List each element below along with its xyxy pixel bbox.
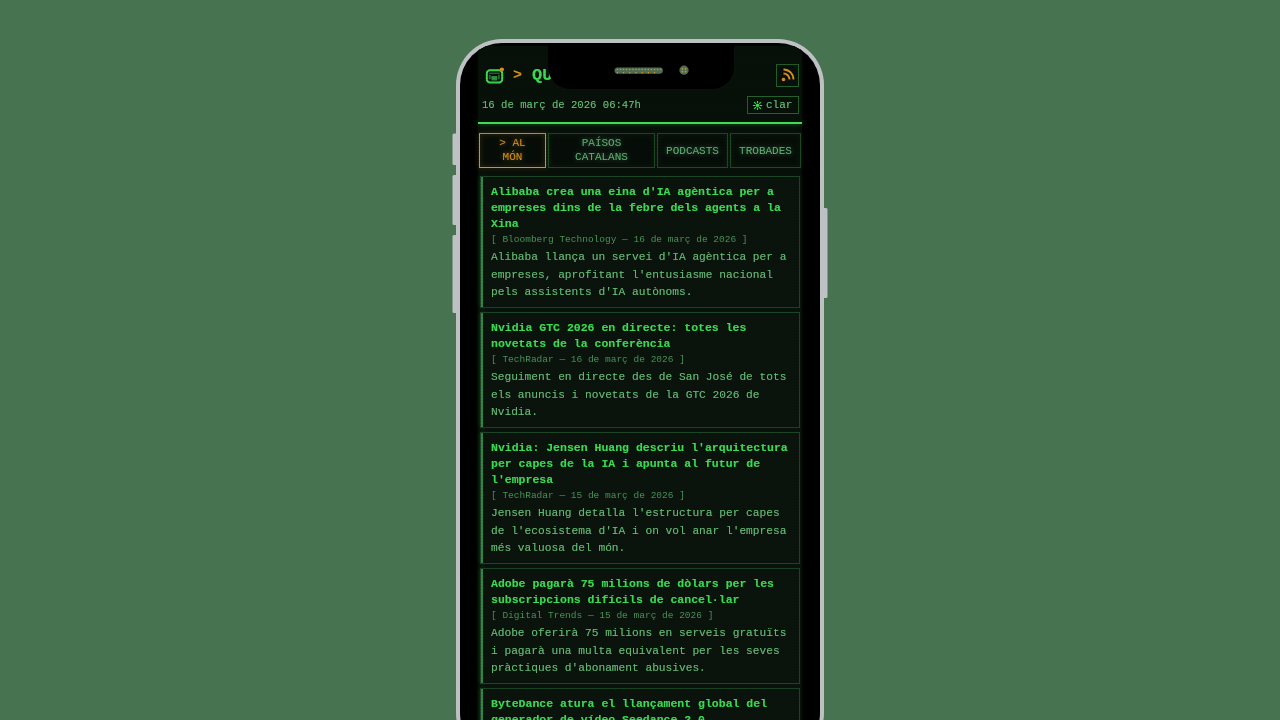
button[interactable]: PODCASTS (657, 133, 728, 168)
staticText: [ TechRadar — 16 de març de 2026 ] (491, 354, 685, 365)
staticText: ByteDance atura el llançament global del… (491, 697, 794, 720)
staticText: Alibaba llança un servei d'IA agèntica p… (491, 251, 794, 298)
staticText: clar (766, 99, 793, 111)
staticText: clar (766, 99, 793, 111)
button[interactable]: PAÍSOS CATALANS (548, 133, 655, 168)
staticText: [ Bloomberg Technology — 16 de març de 2… (491, 234, 748, 245)
button[interactable]: RSS feed (776, 64, 799, 87)
staticText: PODCASTS (666, 145, 719, 157)
staticText: [ TechRadar — 16 de març de 2026 ] (491, 354, 685, 365)
staticText: 16 de març de 2026 06:47h (482, 99, 641, 111)
button[interactable]: Alibaba crea una eina d'IA agèntica per … (480, 176, 800, 308)
staticText: TROBADES (739, 145, 792, 157)
staticText: Seguiment en directe des de San José de … (491, 371, 794, 418)
button[interactable]: Nvidia GTC 2026 en directe: totes les no… (480, 312, 800, 428)
button[interactable]: PAÍSOS CATALANS (548, 133, 655, 168)
staticText: [ Digital Trends — 15 de març de 2026 ] (491, 610, 714, 621)
button[interactable]: clar (753, 99, 793, 111)
staticText: Jensen Huang detalla l'estructura per ca… (491, 507, 794, 554)
staticText: ByteDance atura el llançament global del… (491, 697, 794, 720)
button[interactable]: > AL MÓN (479, 133, 546, 168)
button[interactable]: Adobe pagarà 75 milions de dòlars per le… (480, 568, 800, 684)
staticText: > AL MÓN (499, 137, 526, 164)
staticText: > AL MÓN (499, 137, 526, 164)
staticText: Nvidia: Jensen Huang descriu l'arquitect… (491, 441, 794, 486)
staticText: Adobe oferirà 75 milions en serveis grat… (491, 627, 794, 674)
button[interactable]: TROBADES (730, 133, 801, 168)
button[interactable]: Nvidia: Jensen Huang descriu l'arquitect… (480, 432, 800, 564)
button[interactable]: Adobe pagarà 75 milions de dòlars per le… (480, 568, 800, 684)
button[interactable]: TROBADES (730, 133, 801, 168)
staticText: QUIOSC (532, 66, 594, 85)
staticText: Nvidia: Jensen Huang descriu l'arquitect… (491, 441, 794, 486)
staticText: PODCASTS (666, 145, 719, 157)
staticText: Jensen Huang detalla l'estructura per ca… (491, 507, 794, 554)
staticText: Adobe pagarà 75 milions de dòlars per le… (491, 577, 794, 606)
staticText: [ TechRadar — 15 de març de 2026 ] (491, 490, 685, 501)
staticText: Nvidia GTC 2026 en directe: totes les no… (491, 321, 794, 350)
button[interactable]: RSS feed (776, 64, 799, 87)
staticText: Nvidia GTC 2026 en directe: totes les no… (491, 321, 794, 350)
button[interactable]: ByteDance atura el llançament global del… (480, 688, 800, 720)
button[interactable]: Alibaba crea una eina d'IA agèntica per … (480, 176, 800, 308)
staticText: > (513, 67, 523, 84)
staticText: [ TechRadar — 15 de març de 2026 ] (491, 490, 685, 501)
staticText: Alibaba crea una eina d'IA agèntica per … (491, 185, 794, 230)
staticText: Alibaba crea una eina d'IA agèntica per … (491, 185, 794, 230)
staticText: > (513, 67, 523, 84)
staticText: Adobe oferirà 75 milions en serveis grat… (491, 627, 794, 674)
staticText: PAÍSOS CATALANS (575, 137, 628, 164)
staticText: [ Bloomberg Technology — 16 de març de 2… (491, 234, 748, 245)
button[interactable]: Nvidia GTC 2026 en directe: totes les no… (480, 312, 800, 428)
staticText: QUIOSC (532, 66, 594, 85)
button[interactable]: clar (753, 99, 793, 111)
staticText: Adobe pagarà 75 milions de dòlars per le… (491, 577, 794, 606)
staticText: [ Digital Trends — 15 de març de 2026 ] (491, 610, 714, 621)
button[interactable]: Nvidia: Jensen Huang descriu l'arquitect… (480, 432, 800, 564)
staticText: PAÍSOS CATALANS (575, 137, 628, 164)
button[interactable]: PODCASTS (657, 133, 728, 168)
staticText: 16 de març de 2026 06:47h (482, 99, 641, 111)
staticText: TROBADES (739, 145, 792, 157)
button[interactable]: > AL MÓN (479, 133, 546, 168)
button[interactable]: ByteDance atura el llançament global del… (480, 688, 800, 720)
staticText: Seguiment en directe des de San José de … (491, 371, 794, 418)
staticText: Alibaba llança un servei d'IA agèntica p… (491, 251, 794, 298)
